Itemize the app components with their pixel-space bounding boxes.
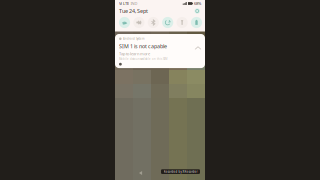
button[interactable]: Bluetooth xyxy=(147,15,159,30)
staticText: SIM 1 is not capable xyxy=(119,42,167,50)
staticText: Vi LTE xyxy=(119,1,129,6)
button[interactable]: Power saving xyxy=(190,15,202,30)
staticText: Tue 24, Sept xyxy=(119,7,148,15)
button[interactable]: Sound xyxy=(133,15,145,30)
staticText: IND xyxy=(130,1,137,6)
staticText: Tap to learn more xyxy=(119,51,150,56)
button[interactable]: Auto rotate xyxy=(162,15,174,30)
staticText: Mobile data unavailable on this SIM xyxy=(119,57,167,61)
button[interactable]: Back xyxy=(136,169,145,177)
button[interactable]: Flashlight xyxy=(176,15,188,30)
staticText: 68% xyxy=(194,1,201,6)
button[interactable]: Wi-Fi xyxy=(118,15,130,30)
staticText: Recorded by XRecorder xyxy=(163,170,197,173)
button[interactable]: Settings xyxy=(193,7,201,15)
button[interactable]: SIM 1 is not capable notification xyxy=(115,34,205,68)
staticText: Android System xyxy=(123,37,144,40)
